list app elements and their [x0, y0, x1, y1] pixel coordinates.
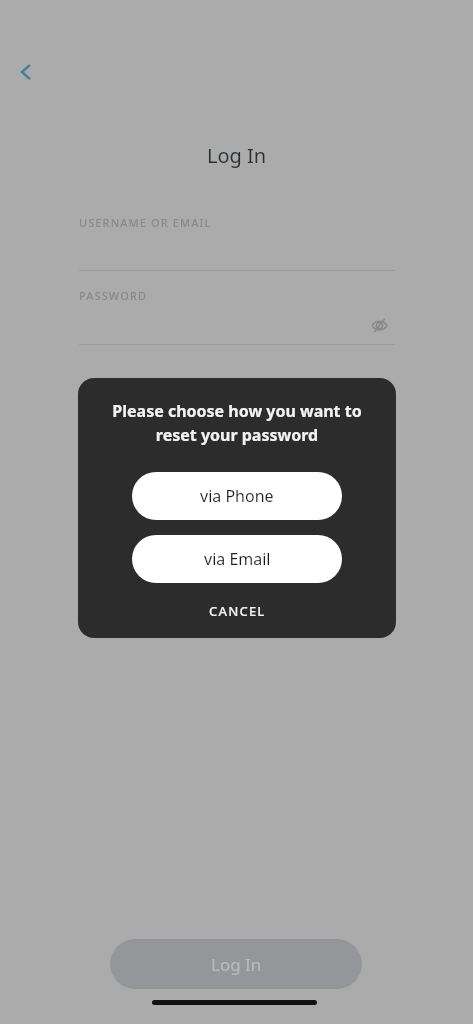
staticText: CANCEL — [209, 602, 266, 620]
staticText: via Phone — [200, 485, 274, 507]
button[interactable]: CANCEL — [191, 598, 284, 624]
staticText: Log In — [211, 953, 262, 976]
button[interactable]: via Email — [132, 535, 342, 583]
staticText: Log In — [207, 142, 267, 169]
button[interactable]: Log In — [110, 939, 362, 989]
button[interactable]: Show password — [362, 308, 396, 342]
staticText: Please choose how you want to reset your… — [99, 400, 375, 446]
staticText: USERNAME OR EMAIL — [79, 215, 212, 230]
button[interactable]: Back — [4, 50, 48, 94]
button[interactable]: via Phone — [132, 472, 342, 520]
staticText: PASSWORD — [79, 288, 148, 303]
staticText: via Email — [204, 548, 271, 570]
